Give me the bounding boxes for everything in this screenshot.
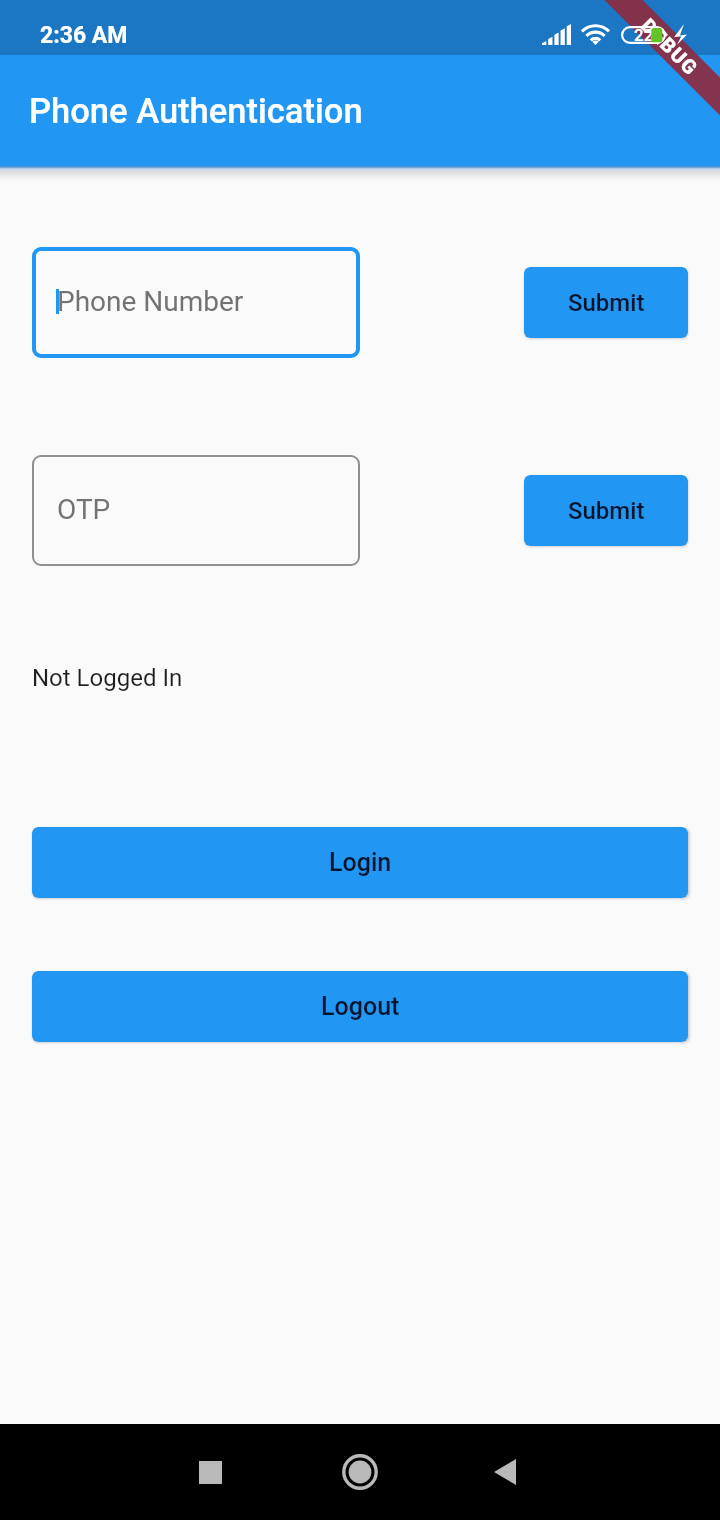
button[interactable]: Login	[32, 827, 688, 898]
button[interactable]: Submit	[524, 267, 688, 338]
button[interactable]: Recent apps	[180, 1442, 240, 1502]
staticText: Login	[329, 848, 392, 877]
staticText: OTP	[57, 493, 111, 526]
staticText: Submit	[568, 289, 645, 317]
button[interactable]: Home	[330, 1442, 390, 1502]
button[interactable]: Logout	[32, 971, 688, 1042]
staticText: Submit	[568, 497, 645, 525]
staticText: Phone Number	[57, 285, 244, 318]
button[interactable]: Back	[475, 1442, 535, 1502]
button[interactable]: Submit	[524, 475, 688, 546]
staticText: Logout	[321, 992, 400, 1021]
button[interactable]: Phone Number	[32, 247, 360, 358]
staticText: DEBUG	[637, 13, 703, 80]
staticText: Not Logged In	[32, 664, 183, 692]
staticText: Phone Authentication	[29, 91, 363, 131]
button[interactable]: OTP	[32, 455, 360, 566]
staticText: 2:36 AM	[40, 22, 128, 49]
staticText: 22	[634, 25, 654, 45]
